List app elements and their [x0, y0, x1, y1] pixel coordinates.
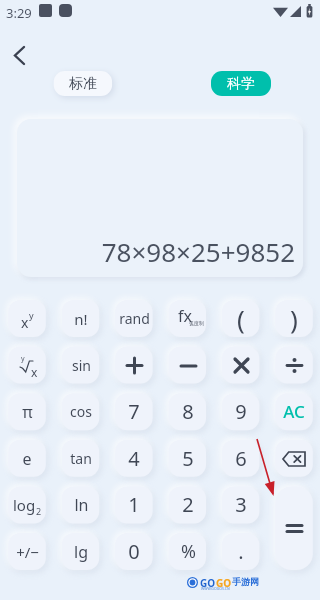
button[interactable]: fx: [169, 300, 207, 337]
staticText: 5: [182, 445, 194, 472]
staticText: 手游网: [232, 576, 259, 587]
staticText: 6: [235, 445, 247, 472]
staticText: 弧度制: [189, 320, 204, 326]
staticText: rand: [119, 309, 150, 328]
staticText: cos: [70, 402, 92, 421]
button[interactable]: ln: [62, 486, 100, 523]
staticText: AC: [283, 400, 305, 423]
button[interactable]: 2: [169, 486, 207, 523]
staticText: WWW.GOGO5.CN: [201, 586, 230, 591]
staticText: log: [13, 495, 36, 515]
button[interactable]: .: [222, 533, 260, 570]
button[interactable]: 7: [115, 393, 153, 430]
staticText: tan: [70, 449, 92, 468]
button[interactable]: sin: [62, 347, 100, 384]
button[interactable]: 3: [222, 486, 260, 523]
button[interactable]: AC: [275, 393, 313, 430]
button[interactable]: Equals: [275, 486, 313, 570]
staticText: n!: [74, 309, 88, 329]
staticText: GO: [200, 576, 216, 590]
staticText: 科学: [227, 75, 255, 93]
staticText: %: [181, 539, 196, 564]
button[interactable]: [169, 347, 207, 384]
button[interactable]: ): [275, 300, 313, 337]
staticText: sin: [72, 356, 91, 375]
button[interactable]: 4: [115, 440, 153, 477]
staticText: fx: [178, 305, 192, 327]
staticText: 78×98×25+9852: [0, 234, 295, 269]
staticText: 标准: [69, 75, 97, 93]
button[interactable]: Back: [3, 39, 35, 71]
staticText: 3: [235, 491, 247, 518]
button[interactable]: 8: [169, 393, 207, 430]
staticText: ): [290, 301, 298, 336]
staticText: 2: [182, 491, 194, 518]
staticText: 8: [182, 398, 194, 425]
button[interactable]: e: [8, 440, 46, 477]
staticText: 7: [128, 398, 140, 425]
button[interactable]: Backspace: [275, 440, 313, 477]
staticText: 4: [128, 445, 140, 472]
button[interactable]: [275, 347, 313, 384]
staticText: .: [238, 538, 244, 565]
staticText: lg: [74, 541, 88, 563]
staticText: x: [31, 364, 38, 380]
button[interactable]: [222, 347, 260, 384]
button[interactable]: log: [8, 486, 46, 523]
button[interactable]: 6: [222, 440, 260, 477]
button[interactable]: rand: [115, 300, 153, 337]
staticText: 1: [128, 491, 140, 518]
button[interactable]: y: [8, 347, 46, 384]
button[interactable]: tan: [62, 440, 100, 477]
button[interactable]: 5: [169, 440, 207, 477]
staticText: GO: [216, 576, 232, 590]
staticText: 3:29: [6, 4, 32, 22]
button[interactable]: 科学: [211, 71, 271, 96]
staticText: 2: [36, 505, 42, 517]
staticText: 9: [235, 398, 247, 425]
button[interactable]: 1: [115, 486, 153, 523]
button[interactable]: π: [8, 393, 46, 430]
staticText: y: [29, 309, 34, 321]
staticText: ln: [74, 494, 89, 516]
staticText: +/−: [16, 542, 39, 562]
button[interactable]: 9: [222, 393, 260, 430]
button[interactable]: 标准: [54, 71, 112, 96]
button[interactable]: (: [222, 300, 260, 337]
button[interactable]: n!: [62, 300, 100, 337]
staticText: (: [237, 301, 245, 336]
button[interactable]: x: [8, 300, 46, 337]
staticText: 0: [128, 538, 140, 565]
staticText: e: [22, 448, 32, 470]
staticText: π: [22, 401, 33, 423]
button[interactable]: +/−: [8, 533, 46, 570]
button[interactable]: lg: [62, 533, 100, 570]
button[interactable]: [115, 347, 153, 384]
button[interactable]: 0: [115, 533, 153, 570]
staticText: x: [21, 313, 29, 332]
button[interactable]: cos: [62, 393, 100, 430]
button[interactable]: %: [169, 533, 207, 570]
staticText: y: [21, 354, 25, 364]
